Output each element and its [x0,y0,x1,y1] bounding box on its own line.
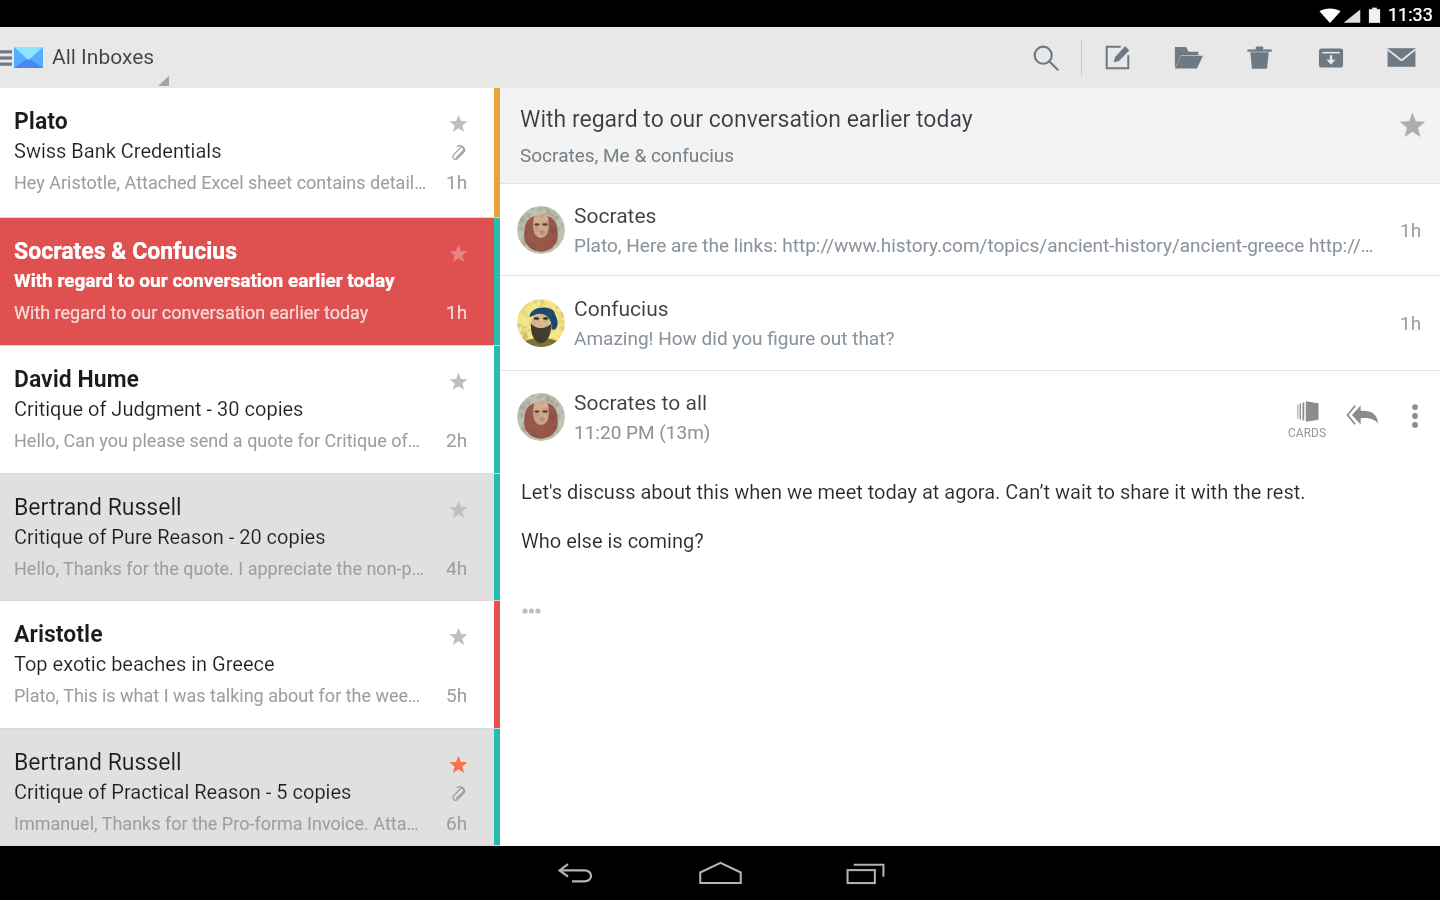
button[interactable]: Bertrand Russell [0,474,500,601]
staticText: 11:33 [1388,4,1433,25]
staticText: Plato, This is what I was talking about … [14,685,430,706]
button[interactable]: Star [439,106,473,137]
staticText: Socrates [574,204,657,229]
staticText: Hey Aristotle, Attached Excel sheet cont… [14,172,430,193]
staticText: Socrates & Confucius [14,238,238,265]
button[interactable]: Star [439,236,473,267]
staticText: Critique of Judgment - 30 copies [14,397,304,420]
button[interactable]: Search [1010,27,1081,88]
staticText: Top exotic beaches in Greece [14,652,275,675]
button[interactable]: Star [439,364,473,395]
button[interactable]: Back [503,846,648,900]
staticText: David Hume [14,366,140,393]
staticText: Let's discuss about this when we meet to… [521,480,1306,503]
staticText: Critique of Pure Reason - 20 copies [14,525,326,548]
staticText: Bertrand Russell [14,749,182,776]
staticText: Aristotle [14,621,103,648]
button[interactable]: Compose [1082,27,1153,88]
button[interactable]: Show quoted text [521,602,555,620]
button[interactable]: Star [439,619,473,650]
button[interactable]: Recent apps [793,846,938,900]
staticText: 4h [446,557,468,579]
button[interactable]: Home [648,846,793,900]
staticText: With regard to our conversation earlier … [14,302,430,323]
staticText: Amazing! How did you figure out that? [574,327,895,349]
button[interactable]: Plato [0,88,500,218]
staticText: With regard to our conversation earlier … [14,269,395,291]
staticText: Immanuel, Thanks for the Pro-forma Invoi… [14,813,430,834]
staticText: Plato, Here are the links: http://www.hi… [574,234,1386,256]
staticText: Socrates to all [574,391,708,416]
staticText: 1h [1400,219,1422,241]
button[interactable]: Cards [1279,400,1336,440]
staticText: With regard to our conversation earlier … [520,106,973,133]
staticText: 6h [446,812,468,834]
staticText: Hello, Can you please send a quote for C… [14,430,430,451]
staticText: Who else is coming? [521,529,704,552]
staticText: 5h [446,684,468,706]
button[interactable]: More options [1395,396,1435,436]
button[interactable]: Star conversation [1394,107,1430,143]
button[interactable]: Bertrand Russell [0,729,500,846]
staticText: 1h [1400,312,1422,334]
staticText: 1h [446,301,468,323]
button[interactable]: Confucius [500,276,1440,370]
staticText: Plato [14,108,68,135]
staticText: 1h [446,171,468,193]
button[interactable]: Star [439,492,473,523]
staticText: Critique of Practical Reason - 5 copies [14,780,352,803]
staticText: Bertrand Russell [14,494,182,521]
staticText: 11:20 PM (13m) [574,421,711,443]
staticText: Swiss Bank Credentials [14,139,222,162]
staticText: All Inboxes [52,45,155,70]
button[interactable]: David Hume [0,346,500,474]
staticText: Hello, Thanks for the quote. I appreciat… [14,558,430,579]
button[interactable]: Aristotle [0,601,500,729]
button[interactable]: Star [439,747,473,778]
button[interactable]: Socrates [500,184,1440,275]
staticText: Socrates, Me & confucius [520,144,735,166]
staticText: 2h [446,429,468,451]
button[interactable]: Delete [1224,27,1295,88]
button[interactable]: Reply all [1341,394,1383,436]
button[interactable]: Move to folder [1153,27,1224,88]
button[interactable]: Archive [1295,27,1366,88]
staticText: CARDS [1288,426,1327,440]
button[interactable]: All Inboxes [0,27,171,88]
button[interactable]: Socrates & Confucius [0,218,500,346]
button[interactable]: Mark as unread [1366,27,1437,88]
staticText: Confucius [574,297,669,322]
